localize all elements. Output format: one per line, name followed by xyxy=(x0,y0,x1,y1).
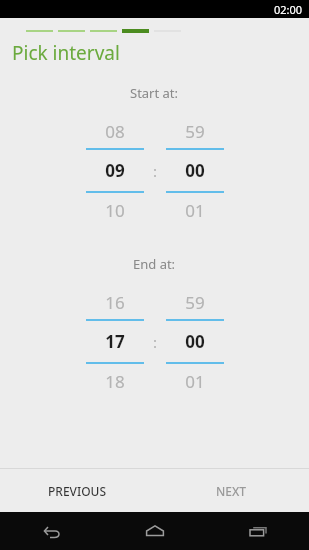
button[interactable]: 01 xyxy=(166,193,224,227)
button[interactable]: 16 xyxy=(86,285,144,319)
staticText: End at: xyxy=(133,255,176,273)
staticText: Pick interval xyxy=(12,40,120,66)
button[interactable]: 00 xyxy=(166,150,224,191)
staticText: 59 xyxy=(185,291,205,314)
staticText: 59 xyxy=(185,120,205,143)
staticText: 17 xyxy=(105,330,125,353)
staticText: 00 xyxy=(185,330,205,353)
staticText: 18 xyxy=(105,370,125,393)
staticText: 00 xyxy=(185,159,205,182)
button[interactable]: 59 xyxy=(166,285,224,319)
staticText: 02:00 xyxy=(274,2,303,17)
button[interactable]: 17 xyxy=(86,321,144,362)
staticText: : xyxy=(153,332,158,352)
staticText: 09 xyxy=(105,159,125,182)
button[interactable]: 09 xyxy=(86,150,144,191)
button[interactable]: 01 xyxy=(166,364,224,398)
button[interactable]: 18 xyxy=(86,364,144,398)
button[interactable]: PREVIOUS xyxy=(0,469,154,512)
staticText: 08 xyxy=(105,120,125,143)
staticText: : xyxy=(153,161,158,181)
staticText: 10 xyxy=(105,199,125,222)
staticText: Start at: xyxy=(130,84,179,102)
button[interactable]: Recent apps xyxy=(206,512,309,550)
button[interactable]: 59 xyxy=(166,114,224,148)
staticText: 16 xyxy=(105,291,125,314)
button[interactable]: Home xyxy=(103,512,206,550)
staticText: PREVIOUS xyxy=(48,483,107,499)
button[interactable]: 10 xyxy=(86,193,144,227)
button[interactable]: 00 xyxy=(166,321,224,362)
staticText: 01 xyxy=(185,199,205,222)
button[interactable]: Back xyxy=(0,512,103,550)
button[interactable]: NEXT xyxy=(154,469,309,512)
button[interactable]: 08 xyxy=(86,114,144,148)
staticText: NEXT xyxy=(216,483,247,499)
staticText: 01 xyxy=(185,370,205,393)
